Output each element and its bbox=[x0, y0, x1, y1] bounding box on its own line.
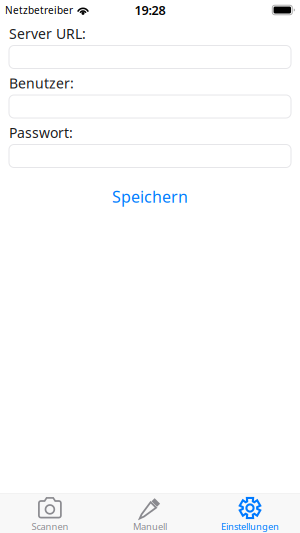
staticText: Benutzer: bbox=[9, 73, 74, 93]
staticText: Speichern bbox=[112, 186, 188, 207]
staticText: Scannen bbox=[31, 520, 68, 533]
button[interactable]: Scannen bbox=[0, 493, 100, 533]
button[interactable]: Speichern bbox=[9, 186, 291, 206]
staticText: 19:28 bbox=[134, 1, 165, 19]
staticText: Manuell bbox=[133, 520, 167, 533]
button[interactable] bbox=[9, 95, 291, 118]
staticText: Netzbetreiber bbox=[5, 3, 73, 17]
staticText: Einstellungen bbox=[221, 520, 279, 533]
staticText: Passwort: bbox=[9, 123, 73, 142]
button[interactable]: Einstellungen bbox=[200, 493, 300, 533]
button[interactable] bbox=[9, 144, 291, 167]
staticText: Server URL: bbox=[9, 24, 86, 43]
button[interactable]: Manuell bbox=[100, 493, 200, 533]
